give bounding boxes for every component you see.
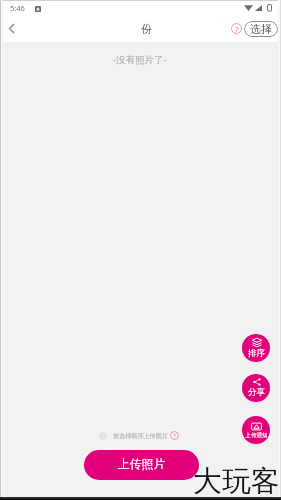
button[interactable]: Help (227, 19, 245, 37)
staticText: -没有照片了- (113, 53, 167, 66)
staticText: 5:46 (10, 3, 25, 13)
staticText: ? (173, 432, 176, 440)
staticText: 按选择顺序上传图片 (113, 432, 168, 440)
staticText: 选择 (250, 22, 272, 36)
button[interactable]: Share (242, 374, 270, 402)
button[interactable]: Upload notice (242, 416, 270, 444)
staticText: 大玩客 (193, 463, 280, 500)
staticText: 份 (141, 22, 152, 36)
staticText: 排序 (248, 348, 265, 359)
staticText: 上传照片 (118, 457, 166, 472)
button[interactable]: Back (0, 17, 22, 39)
staticText: ? (235, 24, 239, 34)
button[interactable]: 按选择顺序上传图片 (97, 429, 181, 442)
staticText: 分享 (248, 387, 265, 398)
button[interactable]: Sort (242, 334, 270, 362)
button[interactable]: 选择 (244, 21, 278, 37)
button[interactable]: 上传照片 (84, 450, 199, 480)
staticText: 上传通知 (245, 432, 268, 439)
